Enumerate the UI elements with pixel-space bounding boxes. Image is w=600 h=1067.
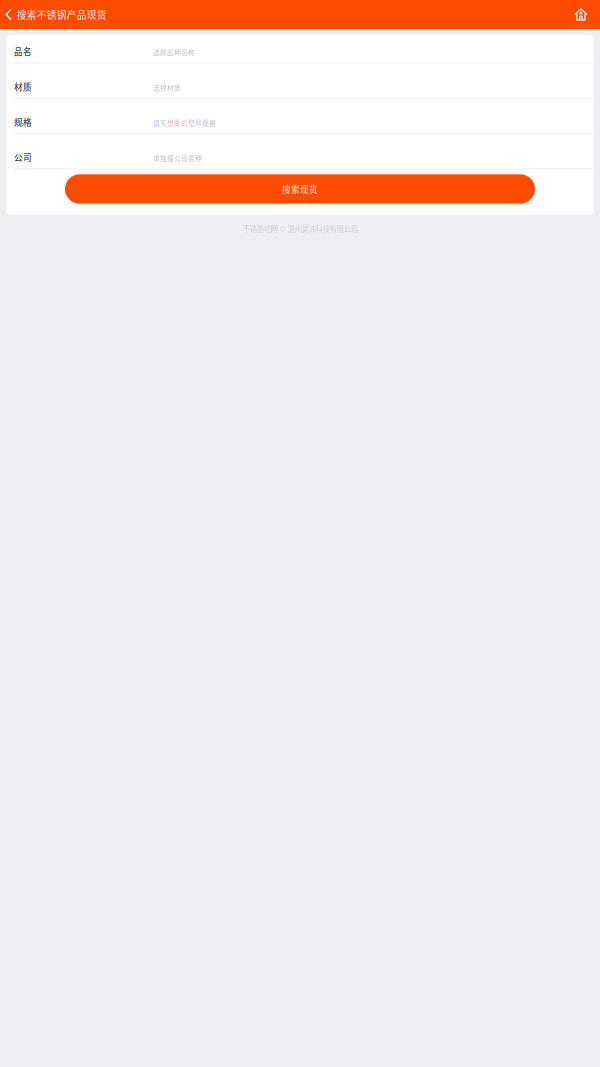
staticText: 选择材质 xyxy=(153,83,181,92)
staticText: 规格 xyxy=(14,116,32,128)
button[interactable]: 公司 xyxy=(6,134,594,168)
staticText: 材质 xyxy=(14,80,32,93)
button[interactable]: 规格 xyxy=(6,99,594,133)
button[interactable]: 材质 xyxy=(6,63,594,98)
button[interactable]: 搜索不锈钢产品现货 xyxy=(0,1,115,27)
button[interactable]: 品名 xyxy=(6,35,594,63)
staticText: 搜索不锈钢产品现货 xyxy=(17,7,107,21)
staticText: 选择品种名称 xyxy=(153,47,195,57)
staticText: 品名 xyxy=(14,45,32,57)
button[interactable]: Home xyxy=(564,2,600,27)
staticText: 搜索现货 xyxy=(282,183,318,195)
staticText: 不锈基地网 © 温州昊沛科技有限公司 xyxy=(242,223,357,234)
staticText: 公司 xyxy=(14,151,32,163)
staticText: 单独搜公司名称 xyxy=(153,153,202,163)
button[interactable]: 搜索现货 xyxy=(65,174,535,204)
staticText: 填写想要的型号规格 xyxy=(153,118,216,128)
